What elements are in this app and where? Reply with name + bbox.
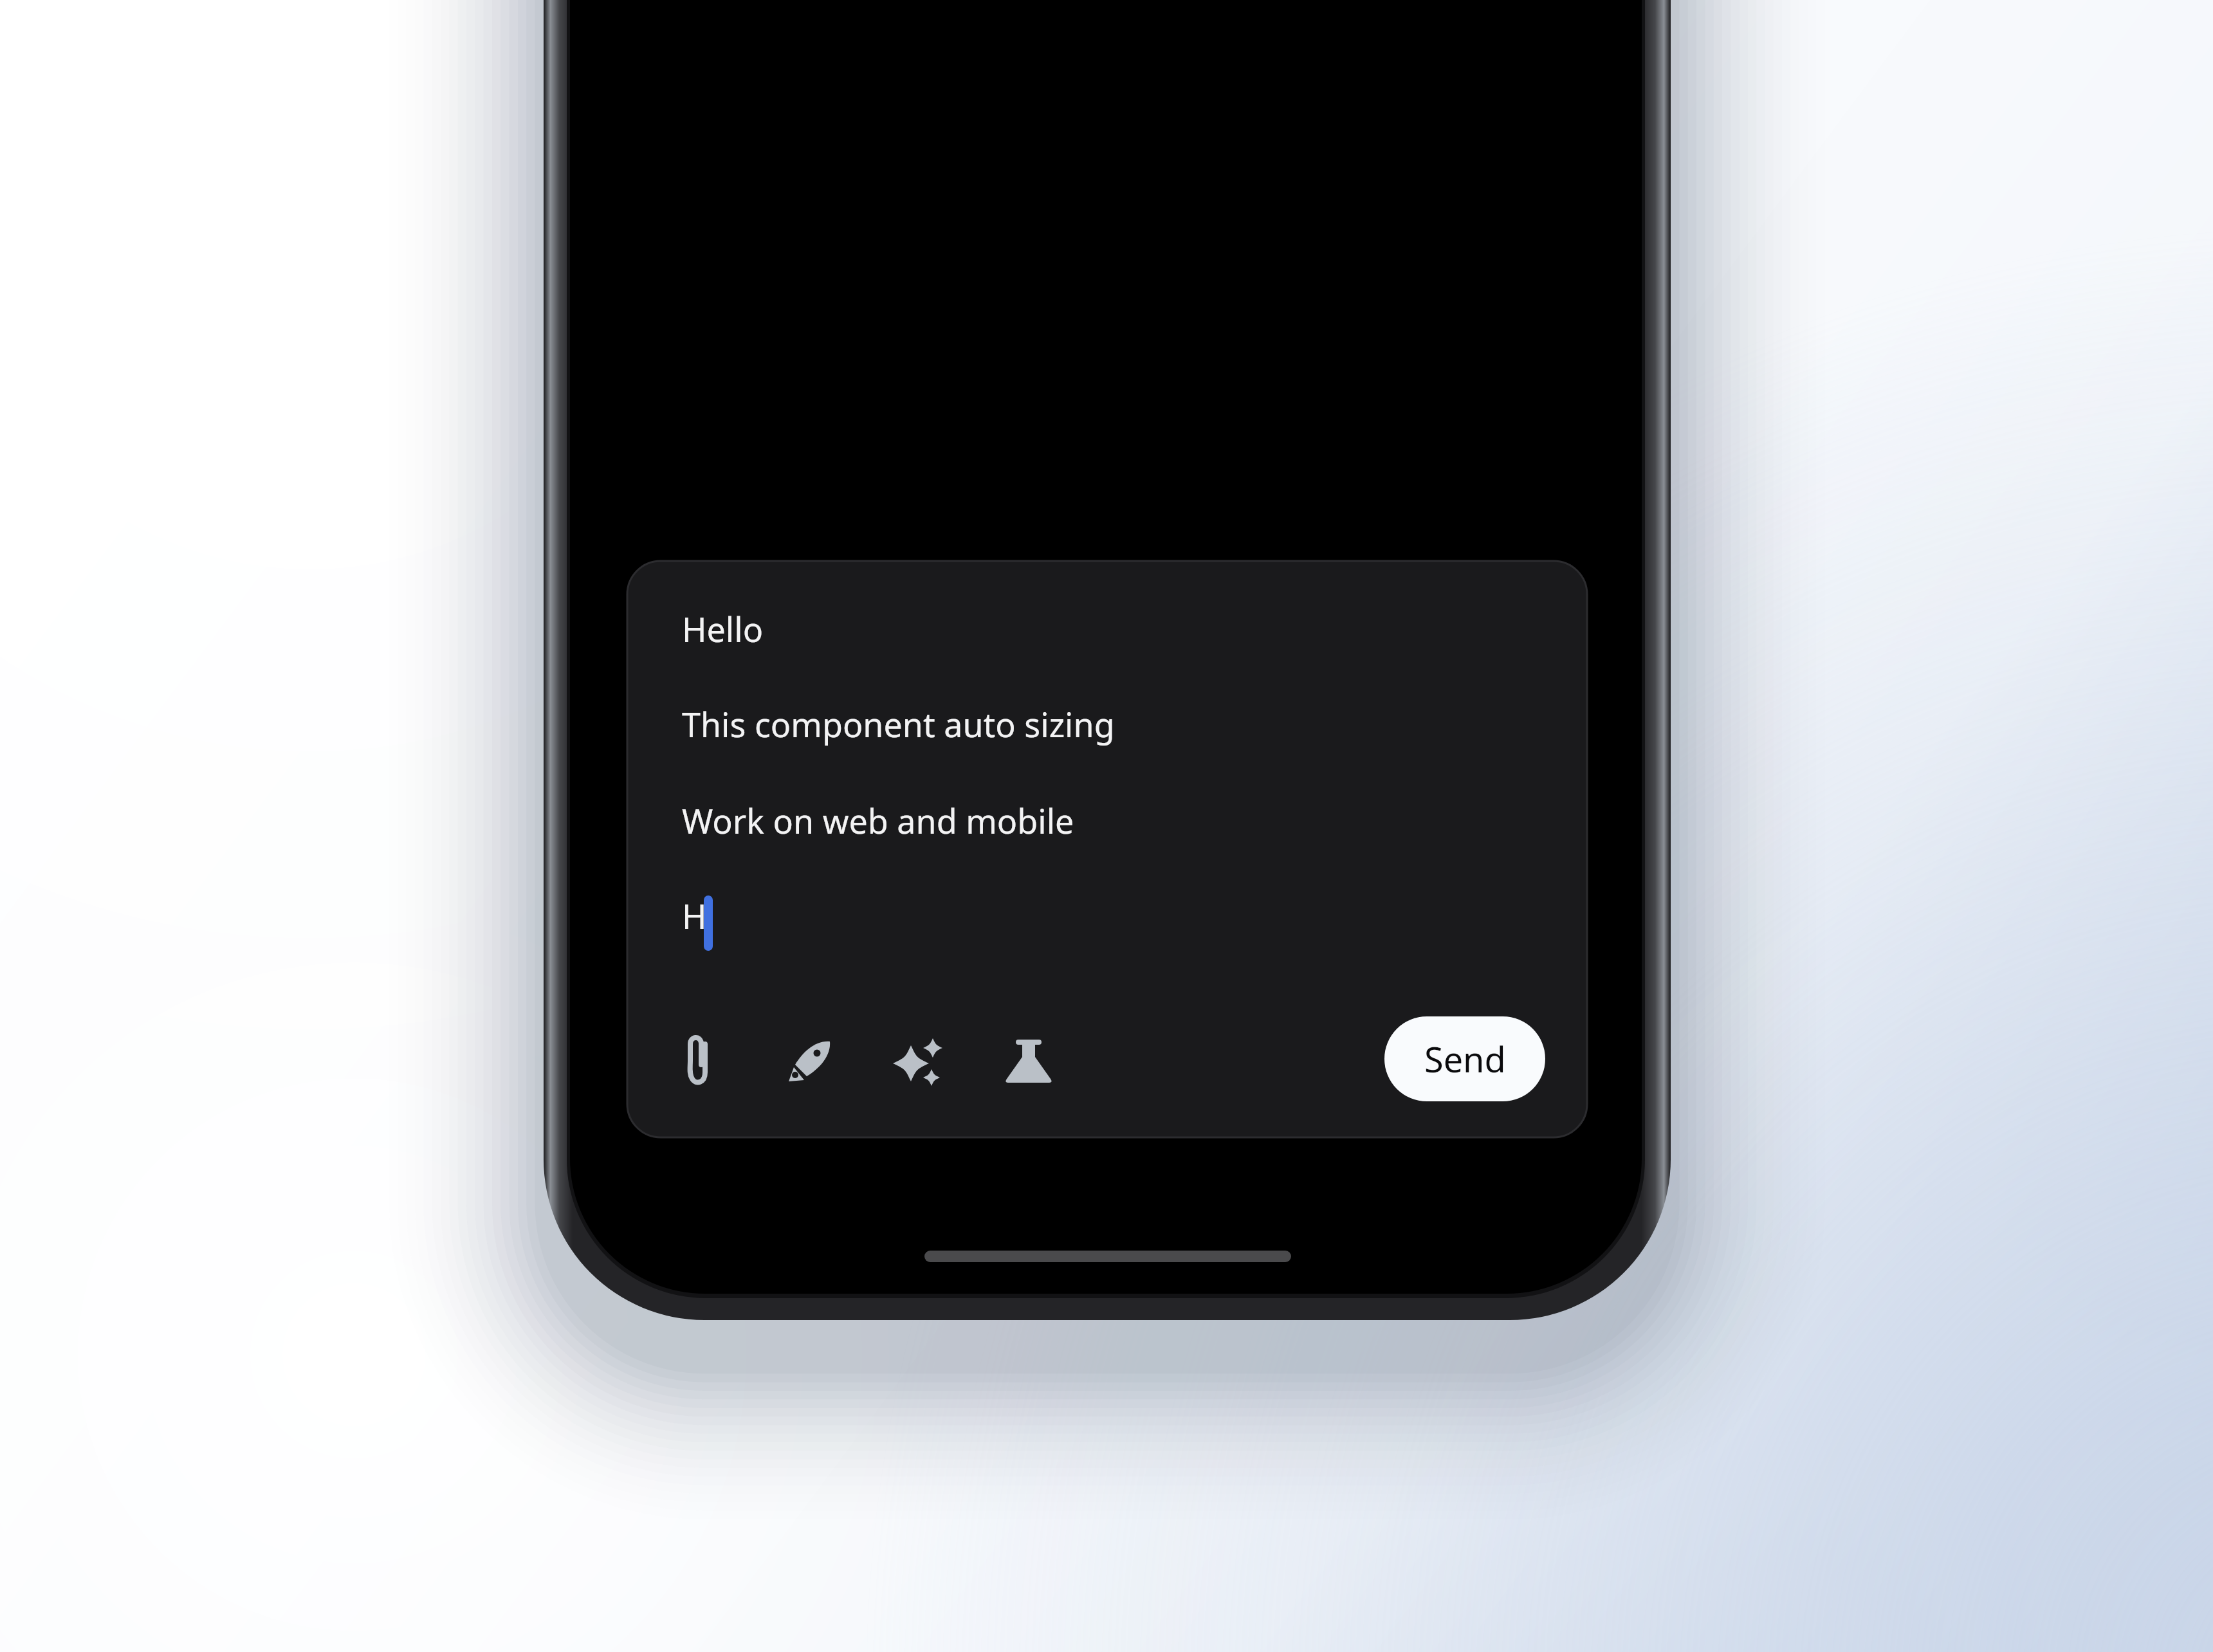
button[interactable]: Send (1384, 1016, 1545, 1101)
button[interactable]: Experiments (998, 1031, 1060, 1093)
staticText: This component auto sizing (682, 701, 1115, 747)
button[interactable]: Boost (778, 1031, 840, 1093)
staticText: H (682, 893, 707, 939)
staticText: Send (1424, 1035, 1506, 1083)
staticText: Hello (682, 606, 764, 652)
button[interactable]: AI enhance (888, 1031, 950, 1093)
staticText: Work on web and mobile (682, 798, 1074, 843)
button[interactable]: Attach file (668, 1031, 730, 1093)
